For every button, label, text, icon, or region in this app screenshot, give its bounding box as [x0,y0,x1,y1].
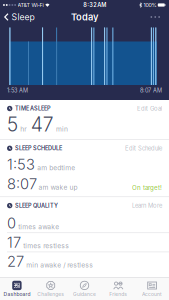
staticText: Sleep [11,12,34,22]
button[interactable]: Edit Goal [137,105,162,112]
staticText: TIME ASLEEP [15,105,51,112]
staticText: 5 [7,113,18,136]
staticText: Account [142,291,162,297]
staticText: SLEEP SCHEDULE [15,145,62,152]
staticText: am bedtime [37,164,75,172]
staticText: 27 [7,253,24,270]
staticText: Dashboard [3,291,30,297]
staticText: am wake up [39,183,78,191]
staticText: Edit Schedule [125,145,162,152]
button[interactable]: Dashboard [0,278,34,300]
staticText: SLEEP QUALITY [15,202,58,209]
button[interactable]: Sleep [0,12,34,22]
staticText: 17 [7,233,21,251]
button[interactable]: Guidance [68,278,101,300]
staticText: 8:07 AM [140,87,162,94]
staticText: Learn More [132,202,162,209]
staticText: 1:53 [7,155,35,173]
staticText: times awake [18,223,59,231]
button[interactable]: Learn More [132,202,162,209]
button[interactable]: Challenges [34,278,68,300]
staticText: Friends [109,291,127,297]
staticText: 1:53 AM [7,87,28,94]
staticText: AT&T Wi-Fi [17,2,43,8]
staticText: 0 [7,214,16,232]
staticText: 100% [143,2,156,8]
staticText: Guidance [73,291,96,297]
staticText: 47 [31,113,54,136]
staticText: 8:07 [7,175,37,193]
staticText: Edit Goal [137,105,162,112]
button[interactable] [150,16,169,18]
button[interactable]: Account [135,278,169,300]
staticText: Today [71,11,98,23]
staticText: On target! [132,184,162,191]
staticText: Challenges [37,291,64,297]
staticText: 8:32 AM [83,2,106,8]
staticText: min awake / restless [26,261,93,269]
staticText: times restless [23,242,69,250]
button[interactable]: Friends [101,278,135,300]
staticText: hr [20,125,27,133]
staticText: min [56,125,68,133]
button[interactable]: Edit Schedule [125,145,162,152]
